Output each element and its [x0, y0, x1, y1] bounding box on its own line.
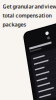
staticText: total compensation — [2, 12, 51, 19]
staticText: packages — [2, 21, 26, 28]
staticText: Get granular and view — [2, 3, 56, 10]
